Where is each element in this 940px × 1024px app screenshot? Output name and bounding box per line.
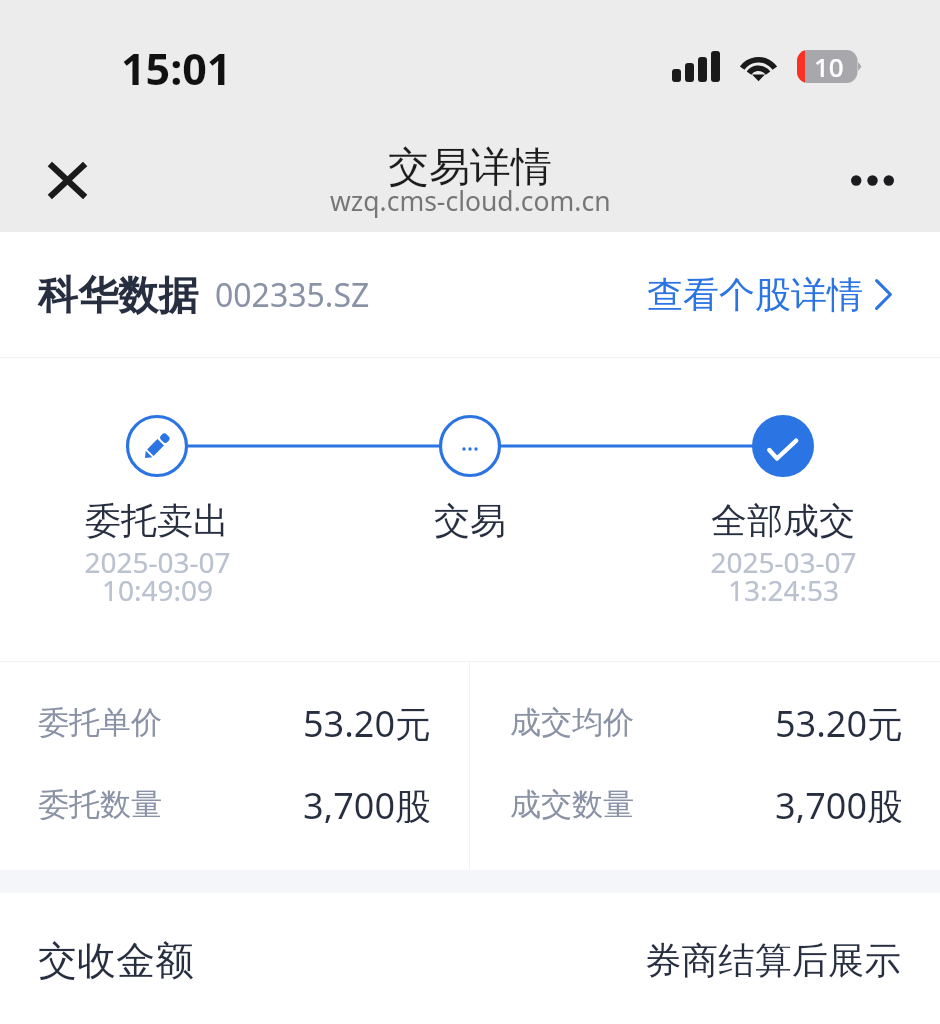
staticText: 成交均价 [510, 703, 634, 742]
staticText: 成交数量 [510, 785, 634, 824]
staticText: 委托单价 [38, 703, 162, 742]
staticText: 交易详情 [388, 142, 552, 194]
staticText: 2025-03-07 10:49:09 [84, 543, 231, 609]
staticText: 2025-03-07 13:24:53 [710, 543, 857, 609]
staticText: 15:01 [121, 39, 232, 98]
staticText: 53.20元 [775, 699, 904, 741]
staticText: 10 [814, 49, 844, 82]
button[interactable]: More options [836, 144, 908, 216]
staticText: 委托数量 [38, 785, 162, 824]
staticText: 查看个股详情 [647, 272, 863, 317]
staticText: 全部成交 [711, 498, 855, 543]
staticText: 002335.SZ [215, 273, 370, 317]
staticText: 3,700股 [775, 781, 904, 823]
staticText: 券商结算后展示 [645, 938, 902, 984]
button[interactable]: 查看个股详情 [647, 272, 892, 317]
staticText: wzq.cms-cloud.com.cn [330, 183, 611, 219]
staticText: 3,700股 [303, 781, 432, 823]
button[interactable]: Close [31, 144, 103, 216]
staticText: 交收金额 [38, 936, 194, 985]
staticText: 53.20元 [303, 699, 432, 741]
staticText: 交易 [434, 498, 506, 543]
staticText: 科华数据 [38, 270, 198, 320]
staticText: 委托卖出 [85, 498, 229, 543]
button[interactable]: 交收金额 [0, 893, 940, 1024]
